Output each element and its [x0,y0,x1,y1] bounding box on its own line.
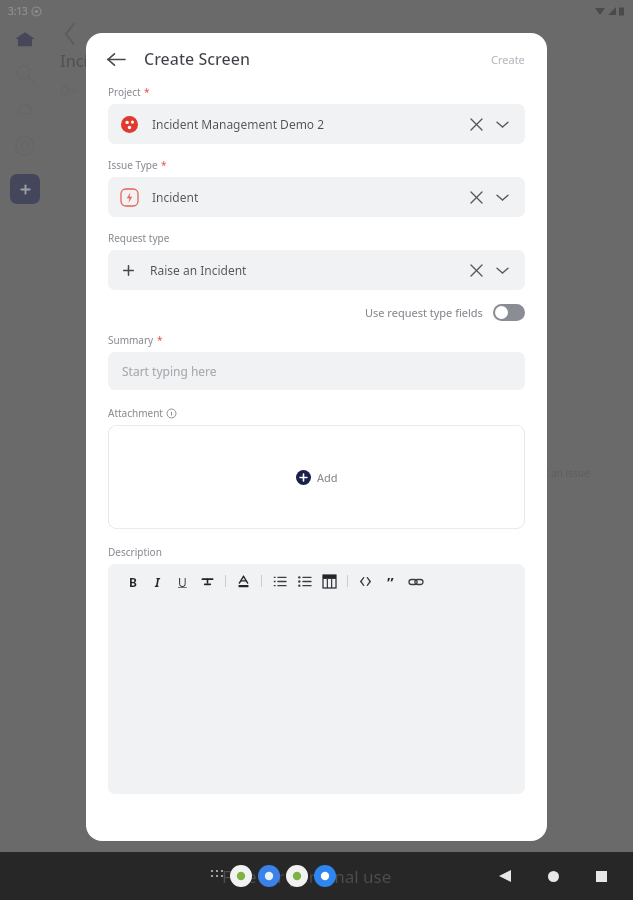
staticText: * [144,85,150,99]
button[interactable]: App [286,865,308,887]
staticText: * [161,158,167,172]
button[interactable]: Ordered list [267,569,292,594]
staticText: Project [108,85,141,99]
staticText: Free for personal use [222,865,392,888]
staticText: Add [317,470,338,485]
staticText: Attachment [108,406,163,420]
button[interactable]: Add attachment [108,425,525,529]
staticText: U [178,574,187,590]
staticText: Request type [108,231,170,245]
button[interactable]: Expand [492,260,512,280]
staticText: B [129,574,137,590]
button[interactable]: Expand [492,187,512,207]
staticText: 3:13 [8,4,28,18]
button[interactable]: Clear [466,187,486,207]
staticText: I [155,574,160,590]
button[interactable]: Strikethrough [195,569,220,594]
button[interactable]: Clear [466,114,486,134]
button[interactable]: Use request type fields [108,304,525,321]
staticText: Description [108,545,162,559]
staticText: Use request type fields [365,305,483,320]
button[interactable]: Create [487,48,529,71]
button[interactable]: Expand [492,114,512,134]
button[interactable]: Incident Management Demo 2 [108,104,525,144]
button[interactable]: Back [102,45,130,73]
button[interactable]: App [258,865,280,887]
staticText: ” [387,572,394,592]
button[interactable]: Bullet list [292,569,317,594]
button[interactable]: App [314,865,336,887]
button[interactable]: Link [403,569,428,594]
button[interactable]: B [120,569,145,594]
button[interactable]: Recents [589,864,613,888]
button[interactable]: App [230,865,252,887]
button[interactable]: Text color [231,569,256,594]
button[interactable]: Back [493,864,517,888]
staticText: * [157,333,163,347]
staticText: Raise an Incident [150,262,247,278]
staticText: Incident Management Demo 2 [60,50,294,72]
button[interactable]: Incident [108,177,525,217]
button[interactable]: Clear [466,260,486,280]
button[interactable]: Italic [145,569,170,594]
button[interactable]: Raise an Incident [108,250,525,290]
staticText: Issue Type [108,158,158,172]
staticText: Create [491,52,525,67]
staticText: Start typing here [122,363,217,379]
button[interactable]: Home [541,864,565,888]
staticText: t an issue [545,466,590,480]
staticText: Create Screen [144,48,250,70]
button[interactable]: Code [353,569,378,594]
staticText: Incident Management Demo 2 [152,116,325,132]
button[interactable]: Start typing here [108,352,525,390]
button[interactable]: Table [317,569,342,594]
staticText: Incident [152,189,199,205]
button[interactable]: Quote [378,569,403,594]
button[interactable]: Underline [170,569,195,594]
staticText: Summary [108,333,154,347]
